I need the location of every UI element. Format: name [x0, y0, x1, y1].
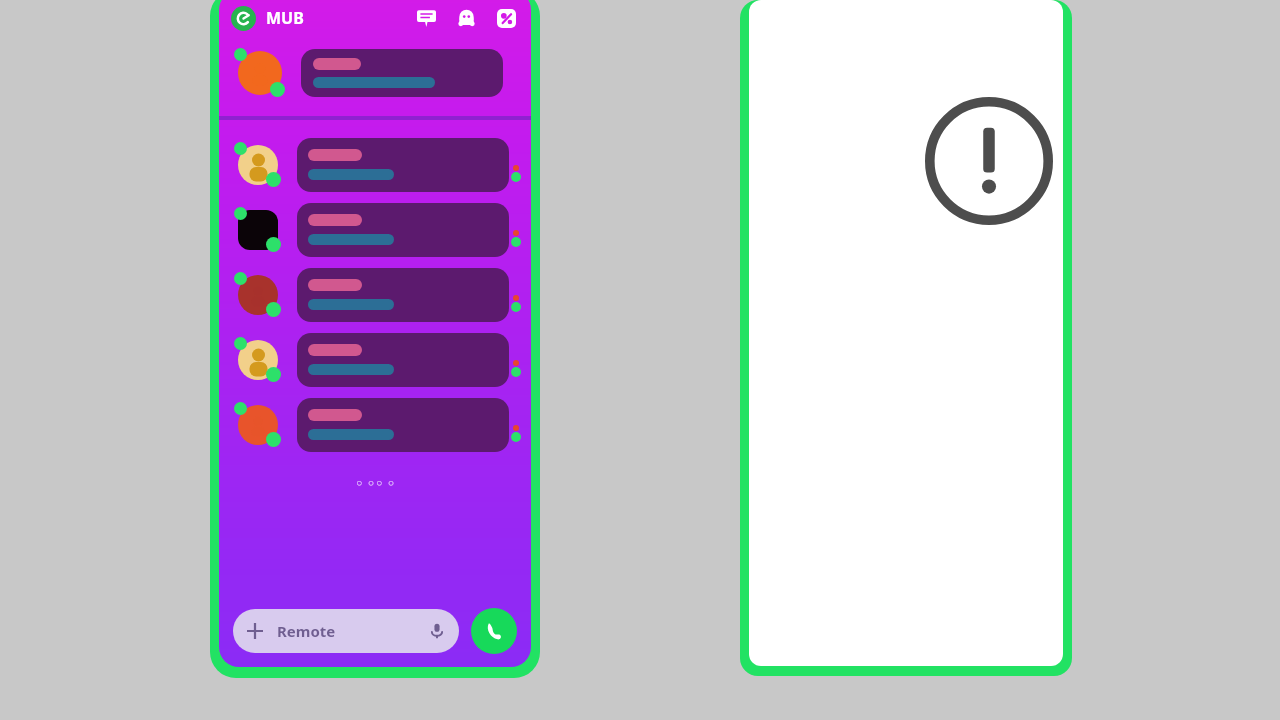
button[interactable]	[219, 333, 531, 387]
button[interactable]	[219, 398, 531, 452]
staticText: ◦ ◦◦ ◦	[355, 474, 395, 492]
button[interactable]: App logo	[231, 6, 256, 31]
staticText: MUB	[266, 7, 304, 29]
button[interactable]: Remote	[233, 609, 459, 653]
button[interactable]: Error	[925, 97, 1053, 225]
button[interactable]	[219, 268, 531, 322]
button[interactable]: Settings	[493, 5, 519, 31]
button[interactable]	[219, 138, 531, 192]
button[interactable]: Messages	[413, 5, 439, 31]
button[interactable]	[219, 203, 531, 257]
button[interactable]: Call	[471, 608, 517, 654]
button[interactable]: Status	[453, 5, 479, 31]
staticText: Remote	[277, 621, 336, 641]
button[interactable]	[219, 42, 531, 104]
